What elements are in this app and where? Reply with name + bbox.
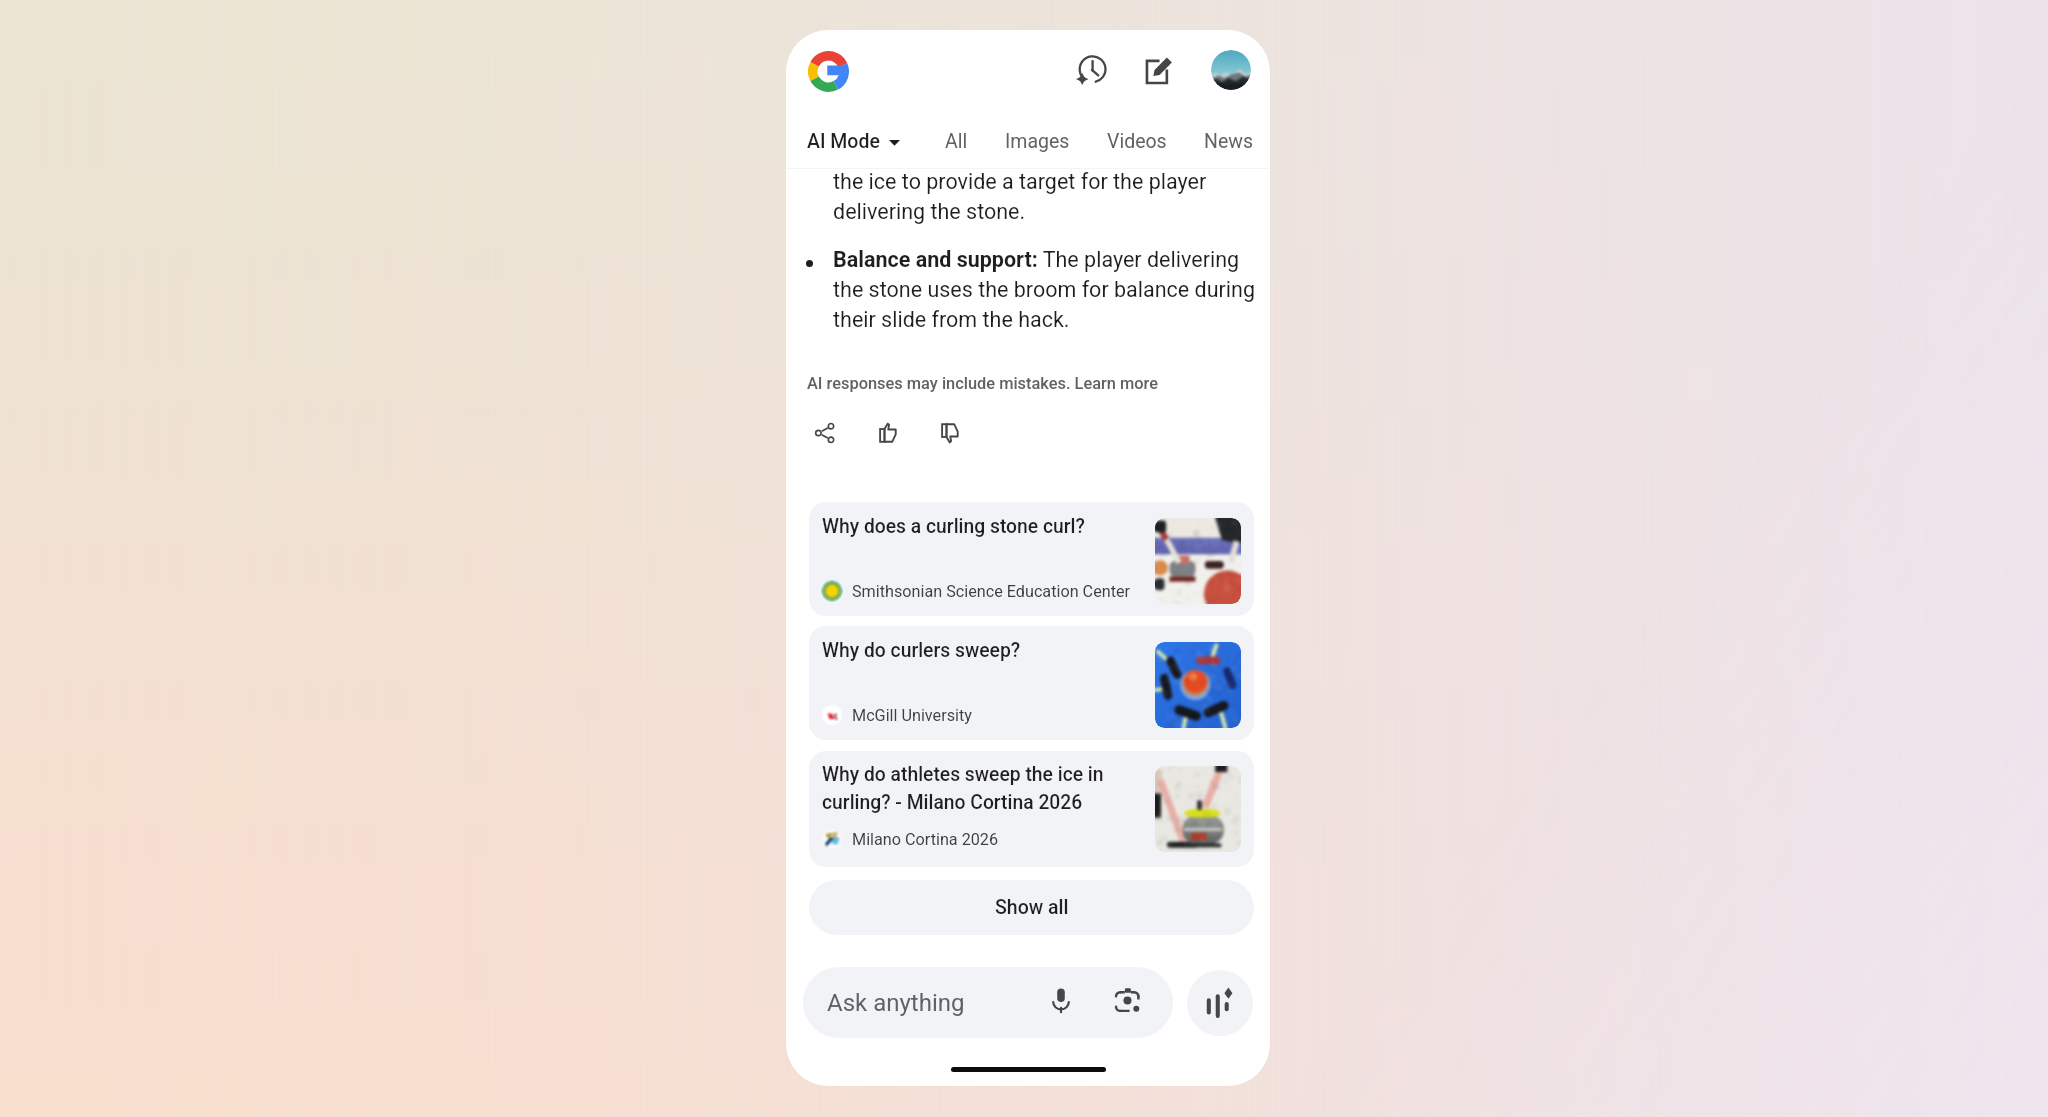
button[interactable]: New chat — [1131, 43, 1186, 98]
staticText: Images — [1005, 130, 1070, 153]
staticText: Why do curlers sweep? — [822, 639, 1021, 662]
staticText: McGill University — [852, 706, 972, 725]
button[interactable]: Why do curlers sweep? — [809, 626, 1254, 740]
button[interactable]: Why does a curling stone curl? — [809, 502, 1254, 616]
staticText: All — [945, 130, 968, 153]
button[interactable]: Show all — [809, 880, 1254, 935]
button[interactable]: AI Mode — [799, 119, 908, 163]
staticText: Why do athletes sweep the ice in curling… — [822, 763, 1104, 813]
button[interactable]: Live — [1187, 970, 1253, 1036]
button[interactable]: News — [1198, 119, 1259, 163]
staticText: News — [1204, 130, 1253, 153]
button[interactable]: Why do athletes sweep the ice in curling… — [809, 751, 1254, 867]
staticText: AI Mode — [807, 130, 880, 153]
staticText: the ice to provide a target for the play… — [833, 169, 1207, 224]
button[interactable]: Images — [999, 119, 1076, 163]
button[interactable]: All — [939, 119, 974, 163]
staticText: Smithsonian Science Education Center — [852, 582, 1131, 601]
staticText: AI responses may include mistakes. Learn… — [807, 374, 1159, 393]
staticText: Show all — [995, 896, 1069, 919]
staticText: Why does a curling stone curl? — [822, 515, 1085, 538]
staticText: Balance and support: The player deliveri… — [833, 247, 1261, 332]
button[interactable]: History — [1064, 43, 1119, 98]
button[interactable]: Videos — [1101, 119, 1173, 163]
button[interactable]: Share — [801, 409, 849, 457]
staticText: Ask anything — [827, 989, 965, 1017]
button[interactable]: Voice search — [1038, 977, 1084, 1023]
button[interactable]: Thumb up — [866, 409, 914, 457]
button[interactable]: Thumb down — [928, 409, 976, 457]
staticText: Videos — [1107, 130, 1167, 153]
button[interactable]: Account — [1211, 50, 1251, 90]
button[interactable]: Google — [787, 30, 869, 112]
button[interactable]: Google Lens — [1105, 978, 1151, 1024]
button[interactable]: Ask anything — [803, 967, 1173, 1038]
staticText: Milano Cortina 2026 — [852, 830, 999, 849]
